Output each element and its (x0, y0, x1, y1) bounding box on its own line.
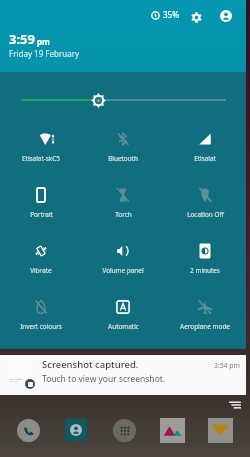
staticText: Etisalat-skC5 (22, 154, 60, 163)
button[interactable]: Volume panel (82, 239, 164, 294)
staticText: pm (37, 36, 50, 47)
staticText: 3:54 pm (214, 361, 240, 370)
button[interactable]: Screenshot captured. (0, 355, 246, 395)
staticText: Portrait (30, 210, 53, 219)
button[interactable]: Gallery (148, 409, 196, 451)
button[interactable]: Etisalat (164, 127, 246, 182)
button[interactable]: Etisalat-skC5 (0, 127, 82, 182)
staticText: Bluetooth (108, 154, 138, 163)
staticText: Friday 19 February (9, 48, 80, 59)
staticText: Invert colours (20, 322, 62, 331)
button[interactable]: Automatic (82, 295, 164, 350)
staticText: 35% (163, 9, 179, 20)
button[interactable]: 2 minutes (164, 239, 246, 294)
button[interactable]: Vibrate (0, 239, 82, 294)
button[interactable]: Location Off (164, 183, 246, 238)
button[interactable]: Apps (100, 409, 148, 451)
staticText: 3:59 (9, 30, 35, 48)
button[interactable]: Brightness (0, 72, 246, 128)
button[interactable]: Portrait (0, 183, 82, 238)
button[interactable]: Email (196, 409, 244, 451)
staticText: Screenshot captured. (42, 358, 139, 371)
staticText: Volume panel (102, 266, 144, 275)
button[interactable]: Contacts (52, 409, 100, 451)
staticText: Automatic (108, 322, 139, 331)
button[interactable]: Torch (82, 183, 164, 238)
staticText: Etisalat (194, 154, 216, 163)
button[interactable]: Aeroplane mode (164, 295, 246, 350)
staticText: Vibrate (30, 266, 52, 275)
staticText: Location Off (187, 210, 224, 219)
button[interactable]: Invert colours (0, 295, 82, 350)
staticText: 2 minutes (190, 266, 220, 275)
button[interactable]: Bluetooth (82, 127, 164, 182)
staticText: Torch (115, 210, 132, 219)
button[interactable]: User profile (216, 6, 236, 26)
button[interactable]: Menu (228, 398, 242, 412)
staticText: Aeroplane mode (180, 322, 230, 331)
button[interactable]: Settings (186, 7, 206, 27)
staticText: Touch to view your screenshot. (42, 373, 166, 385)
button[interactable]: Phone (4, 409, 52, 451)
